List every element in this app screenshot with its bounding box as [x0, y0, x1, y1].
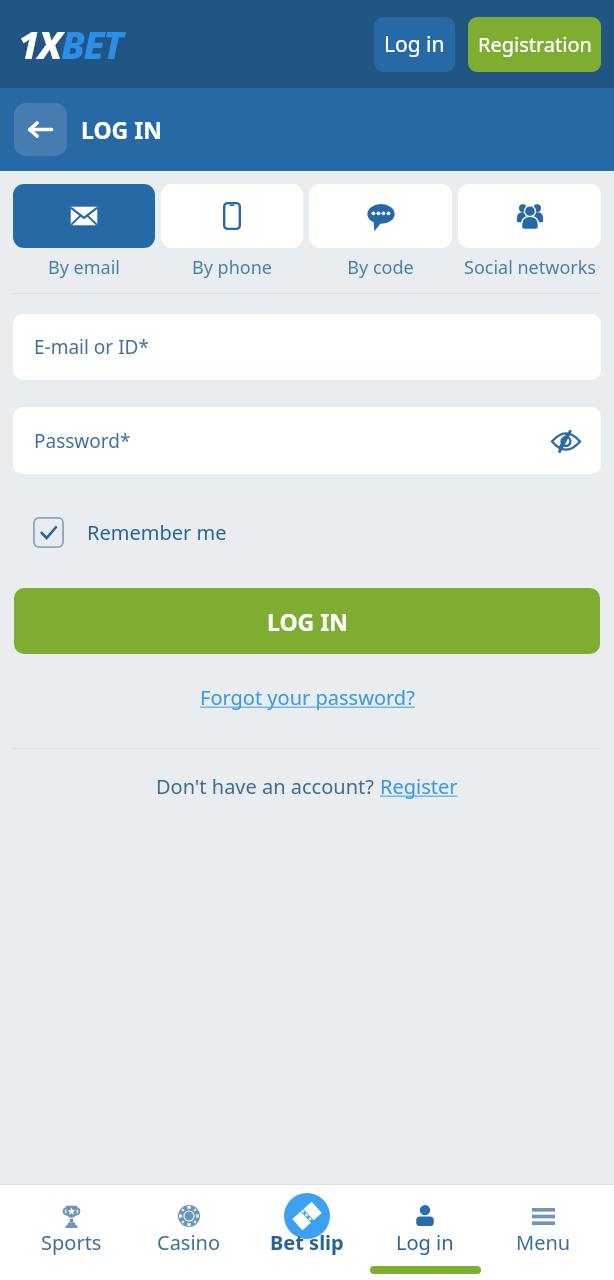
button[interactable]: E-mail or ID*	[13, 314, 601, 380]
staticText: Log in	[384, 30, 445, 59]
button[interactable]: By code	[309, 184, 452, 280]
button[interactable]: By phone	[161, 184, 303, 280]
staticText: BET	[61, 18, 123, 70]
button[interactable]: Log in	[366, 1184, 484, 1280]
staticText: Log in	[396, 1229, 454, 1256]
button[interactable]: Show password	[549, 424, 583, 458]
staticText: 1X	[18, 18, 61, 70]
button[interactable]: By email	[13, 184, 155, 280]
staticText: By code	[347, 255, 414, 280]
staticText: Registration	[478, 31, 592, 58]
staticText: By email	[48, 255, 120, 280]
staticText: LOG IN	[267, 606, 348, 637]
staticText: By phone	[192, 255, 272, 280]
button[interactable]: Sports	[12, 1184, 130, 1280]
staticText: Password*	[34, 428, 131, 454]
staticText: Remember me	[87, 519, 227, 546]
staticText: Sports	[41, 1229, 102, 1256]
staticText: Casino	[157, 1229, 221, 1256]
button[interactable]: Back	[14, 103, 67, 156]
staticText: Don't have an account?	[156, 773, 380, 800]
button[interactable]: LOG IN	[14, 588, 600, 654]
button[interactable]: Registration	[468, 17, 601, 72]
button[interactable]: Bet slip	[248, 1184, 366, 1280]
button[interactable]: Social networks	[458, 184, 601, 280]
staticText: Menu	[516, 1229, 571, 1256]
staticText: E-mail or ID*	[34, 334, 149, 360]
button[interactable]: Forgot your password?	[200, 684, 415, 711]
button[interactable]: Log in	[374, 17, 455, 72]
button[interactable]: Menu	[484, 1184, 602, 1280]
staticText: Social networks	[464, 255, 596, 280]
staticText: LOG IN	[81, 114, 162, 145]
button[interactable]: Casino	[130, 1184, 248, 1280]
button[interactable]: Password*	[13, 407, 601, 474]
button[interactable]: Register	[380, 773, 458, 800]
staticText: Bet slip	[270, 1229, 344, 1256]
button[interactable]: Remember me	[33, 517, 227, 548]
